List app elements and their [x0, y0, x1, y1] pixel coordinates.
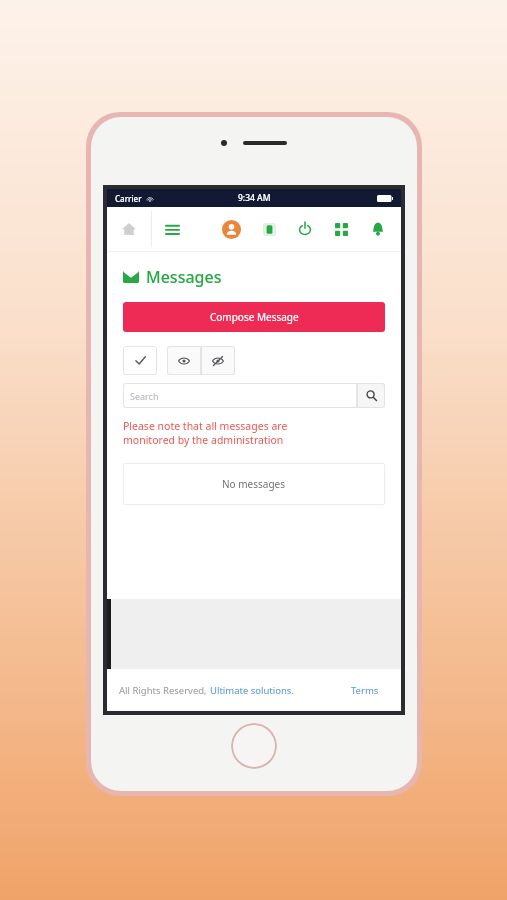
button[interactable]: Hide read: [201, 346, 235, 375]
button[interactable]: Search: [357, 383, 385, 408]
staticText: 9:34 AM: [238, 192, 271, 204]
button[interactable]: Terms: [351, 684, 379, 697]
staticText: Search: [130, 390, 159, 402]
staticText: Messages: [146, 266, 222, 288]
staticText: Compose Message: [210, 310, 299, 324]
button[interactable]: Notifications: [359, 210, 397, 248]
staticText: Please note that all messages are: [123, 419, 288, 433]
button[interactable]: Compose Message: [123, 302, 385, 332]
button[interactable]: Show read: [167, 346, 201, 375]
button[interactable]: Search: [130, 383, 357, 408]
button[interactable]: Power: [287, 211, 323, 247]
button[interactable]: Menu: [152, 207, 192, 251]
button[interactable]: Home: [107, 207, 151, 251]
button[interactable]: Ultimate solutions.: [210, 684, 294, 697]
button[interactable]: Select all: [123, 346, 157, 375]
button[interactable]: Profile: [211, 209, 251, 249]
staticText: All Rights Reserved,: [119, 684, 210, 697]
staticText: monitored by the administration: [123, 433, 284, 447]
staticText: No messages: [222, 477, 286, 491]
button[interactable]: Documents: [251, 211, 287, 247]
staticText: Carrier: [115, 193, 142, 204]
button[interactable]: Apps: [323, 211, 359, 247]
